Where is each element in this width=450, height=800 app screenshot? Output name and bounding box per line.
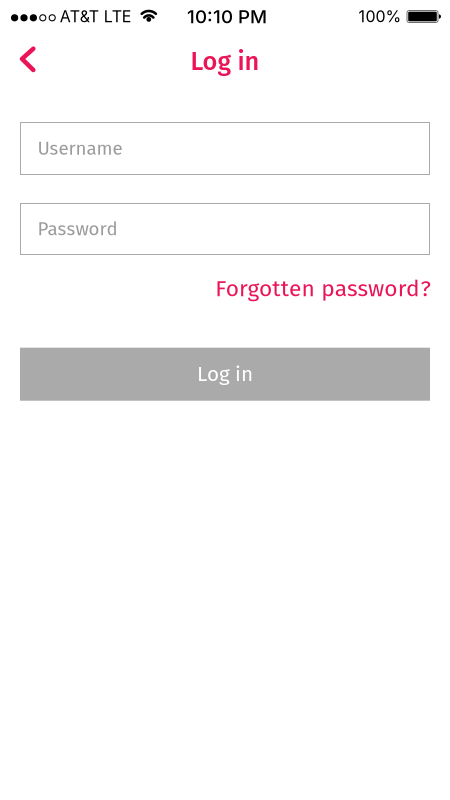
button[interactable]: Log in xyxy=(20,348,430,401)
button[interactable]: Forgotten password? xyxy=(215,275,430,302)
staticText: AT&T LTE xyxy=(60,7,132,26)
staticText: Password xyxy=(37,218,117,240)
staticText: Log in xyxy=(190,46,259,77)
button[interactable]: Username xyxy=(20,122,430,175)
button[interactable]: Back xyxy=(0,32,48,84)
staticText: Forgotten password? xyxy=(215,275,430,302)
button[interactable]: Password xyxy=(20,203,430,255)
staticText: 100% xyxy=(358,7,401,26)
staticText: 10:10 PM xyxy=(187,5,267,27)
staticText: Log in xyxy=(197,362,253,387)
staticText: Username xyxy=(37,137,122,160)
